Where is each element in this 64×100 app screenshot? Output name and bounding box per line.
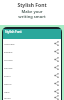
staticText: Stylish Font [17,2,47,9]
other: Share [54,49,59,54]
button[interactable]: Aesthetic [3,39,61,47]
other: Share [54,73,59,78]
staticText: Aesthetic [4,42,15,45]
other: Share [54,57,59,62]
staticText: Bubble [4,50,13,53]
staticText: Mono [4,96,11,99]
staticText: Fancy [4,74,11,77]
staticText: Italic [4,90,10,93]
button[interactable]: Cursive [3,55,61,63]
staticText: Stylish Font [5,30,22,34]
staticText: Cursive [4,58,13,61]
button[interactable]: Double [3,63,61,71]
other: Share [54,89,59,94]
other: Share [54,95,59,100]
button[interactable]: Gothic [3,79,61,87]
other: Share [54,81,59,86]
other: Share [54,65,59,70]
button[interactable]: Italic [3,87,61,95]
staticText: Gothic [4,82,12,85]
other: Share [54,41,59,46]
staticText: Make your writing smart [18,9,46,19]
button[interactable]: Mono [3,95,61,100]
button[interactable]: Fancy [3,71,61,79]
staticText: Double [4,66,13,69]
button[interactable]: Bubble [3,47,61,55]
